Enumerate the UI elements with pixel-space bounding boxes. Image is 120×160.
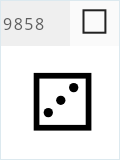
button[interactable]: 9858 [0,0,70,46]
button[interactable]: Dice showing three, tap to roll [34,73,92,131]
staticText: 9858 [3,13,46,35]
button[interactable]: Roll the dice [70,0,120,46]
